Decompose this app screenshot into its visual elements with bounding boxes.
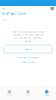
- staticText: RealPlayer Cloud: [2, 12, 26, 16]
- staticText: Library: [6, 94, 12, 96]
- button[interactable]: Share: [19, 86, 37, 100]
- button[interactable]: More: [46, 6, 56, 11]
- staticText: Sign in: [2, 18, 9, 21]
- staticText: Sign in to your RealPlayer Cloud account…: [12, 30, 44, 42]
- staticText: Back: [2, 7, 6, 10]
- button[interactable]: Back: [0, 6, 12, 11]
- button[interactable]: Library: [0, 86, 19, 100]
- button[interactable]: Cloud: [37, 86, 56, 100]
- button[interactable]: Sign in: [4, 45, 52, 53]
- staticText: Don't have an account?: [17, 56, 39, 59]
- button[interactable]: Create account: [0, 60, 56, 64]
- staticText: Sign in: [24, 47, 31, 51]
- staticText: Share: [25, 94, 30, 96]
- staticText: Create account: [21, 60, 35, 63]
- staticText: Cloud: [45, 94, 49, 96]
